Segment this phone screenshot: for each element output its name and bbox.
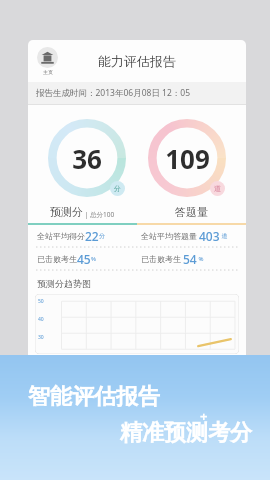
staticText: 预测分趋势图 (37, 278, 91, 289)
staticText: 50 (38, 298, 44, 305)
staticText: 能力评估报告 (98, 53, 176, 69)
staticText: 54 (183, 251, 197, 267)
staticText: 已击败考生 (37, 254, 77, 264)
staticText: 已击败考生 (141, 254, 181, 264)
staticText: % (197, 255, 204, 263)
staticText: 403 (199, 228, 220, 244)
staticText: 分 (99, 232, 105, 240)
staticText: 全站平均得分 (37, 231, 85, 241)
staticText: + (200, 407, 208, 425)
button[interactable]: 主页 (33, 45, 62, 77)
staticText: 道 (220, 232, 228, 240)
staticText: 40 (38, 316, 44, 323)
staticText: 全站平均答题量 (141, 231, 197, 241)
staticText: 报告生成时间：2013年06月08日 12：05 (36, 87, 191, 99)
staticText: 主页 (43, 69, 53, 75)
staticText: 道 (214, 184, 221, 193)
staticText: 预测分 (50, 205, 83, 219)
staticText: 精准预测考分 (120, 419, 252, 447)
staticText: % (91, 255, 96, 263)
staticText: | 总分100 (83, 210, 115, 219)
staticText: 分 (114, 184, 121, 193)
staticText: 109 (165, 141, 210, 176)
staticText: 36 (72, 141, 102, 176)
staticText: 22 (85, 228, 99, 244)
staticText: 答题量 (175, 205, 208, 219)
staticText: 智能评估报告 (28, 383, 160, 411)
staticText: 45 (77, 251, 91, 267)
staticText: 30 (38, 334, 44, 341)
